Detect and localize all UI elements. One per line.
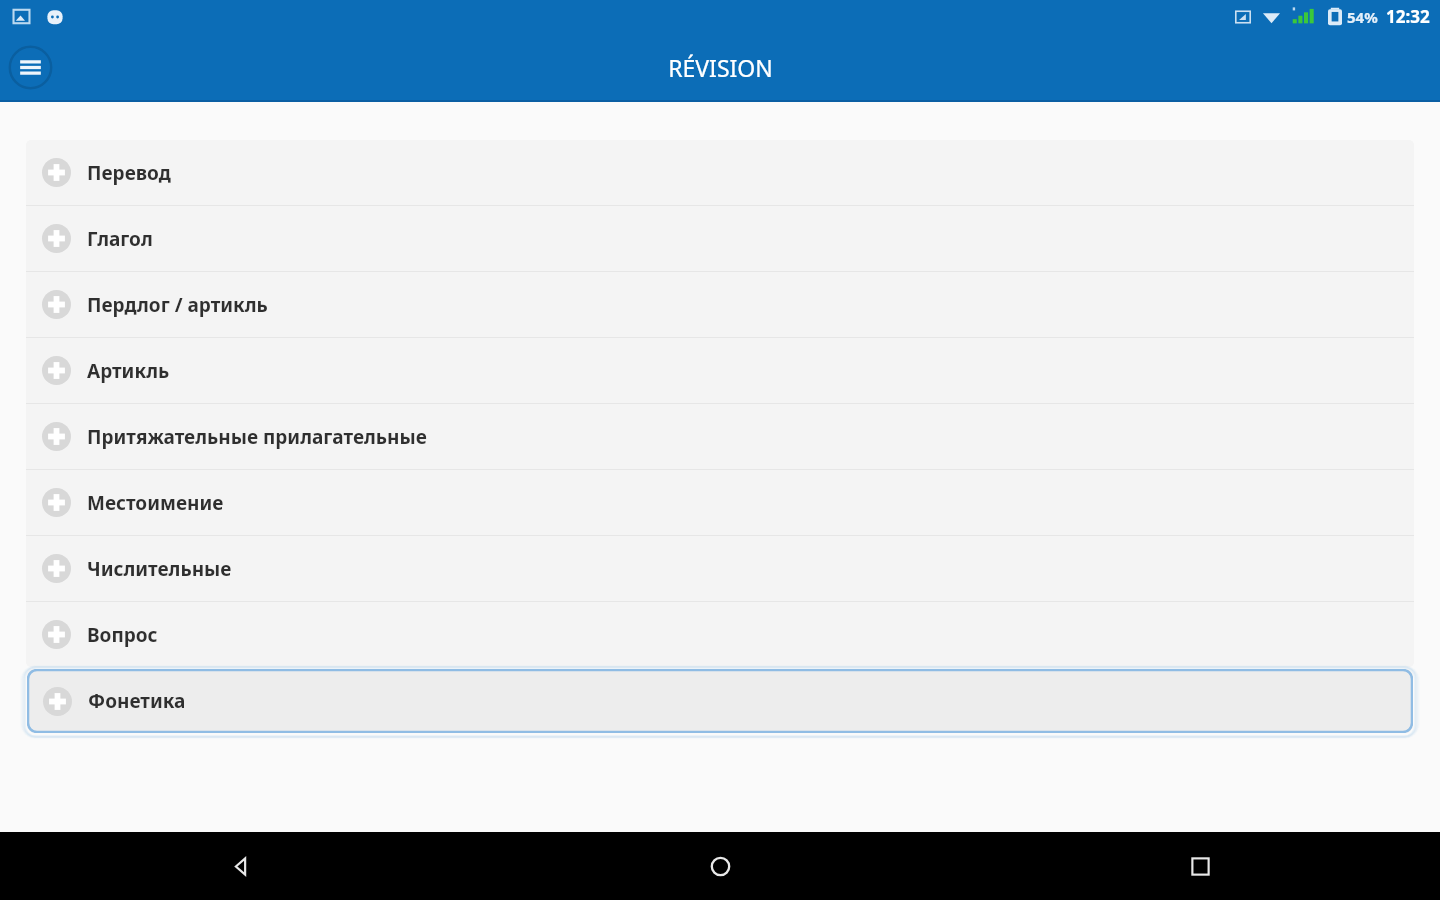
staticText: Вопрос	[87, 622, 158, 648]
button[interactable]: Перевод	[26, 140, 1414, 205]
button[interactable]: Back	[0, 832, 480, 900]
staticText: Артикль	[87, 358, 170, 384]
button[interactable]: Recent apps	[960, 832, 1440, 900]
button[interactable]: Пердлог / артикль	[26, 272, 1414, 337]
button[interactable]: Числительные	[26, 536, 1414, 601]
staticText: Числительные	[87, 556, 232, 582]
button[interactable]: Артикль	[26, 338, 1414, 403]
staticText: Местоимение	[87, 490, 224, 516]
button[interactable]: Местоимение	[26, 470, 1414, 535]
button[interactable]: Вопрос	[26, 602, 1414, 667]
button[interactable]: Home	[480, 832, 960, 900]
staticText: Перевод	[87, 160, 171, 186]
button[interactable]: Глагол	[26, 206, 1414, 271]
staticText: Фонетика	[88, 688, 186, 714]
button[interactable]: Open navigation menu	[7, 44, 54, 91]
staticText: 12:32	[1386, 5, 1430, 28]
staticText: RÉVISION	[668, 52, 773, 83]
staticText: Пердлог / артикль	[87, 292, 268, 318]
staticText: 54%	[1347, 7, 1378, 27]
staticText: Притяжательные прилагательные	[87, 424, 427, 450]
button[interactable]: Притяжательные прилагательные	[26, 404, 1414, 469]
staticText: Глагол	[87, 226, 153, 252]
